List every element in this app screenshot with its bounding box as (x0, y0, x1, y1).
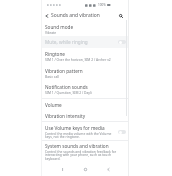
staticText: Ringtone (45, 51, 65, 57)
button[interactable]: Home (79, 163, 91, 175)
button[interactable]: Vibration intensity (41, 111, 129, 121)
button[interactable]: Search (116, 11, 125, 20)
staticText: Vibration pattern (45, 68, 83, 74)
button[interactable]: Recent apps (56, 163, 68, 175)
staticText: System sounds and vibration (45, 143, 109, 149)
staticText: Vibration intensity (45, 113, 86, 119)
staticText: 100% (98, 3, 106, 7)
button[interactable]: Use Volume keys for media (41, 123, 129, 141)
staticText: Volume (45, 102, 62, 108)
staticText: Control the sounds and vibration feedbac… (45, 149, 126, 161)
staticText: Control the media volume with the Volume… (45, 131, 116, 139)
button[interactable]: Ringtone (41, 49, 129, 63)
staticText: Mute, while ringing (45, 39, 88, 45)
button[interactable]: Notification sounds (41, 82, 129, 96)
staticText: Use Volume keys for media (45, 125, 105, 131)
button[interactable]: Volume (41, 100, 129, 110)
button[interactable]: System sounds and vibration (41, 141, 129, 163)
button[interactable]: Vibration pattern (41, 66, 129, 80)
button[interactable]: Back (102, 163, 114, 175)
button[interactable]: Sound mode (41, 22, 129, 36)
staticText: Sounds and vibration (51, 12, 100, 19)
button[interactable]: Mute, while ringing (41, 37, 129, 47)
staticText: Sound mode (45, 24, 74, 30)
staticText: Basic call (45, 74, 59, 78)
staticText: Vibrate (45, 30, 57, 34)
staticText: Notification sounds (45, 84, 88, 90)
staticText: SIM 1 / Over the horizon, SIM 2 / Archer… (45, 57, 111, 61)
button[interactable]: Navigate up (42, 11, 51, 20)
staticText: SIM 1 / Question, SIM 2 / Dayli (45, 90, 92, 94)
